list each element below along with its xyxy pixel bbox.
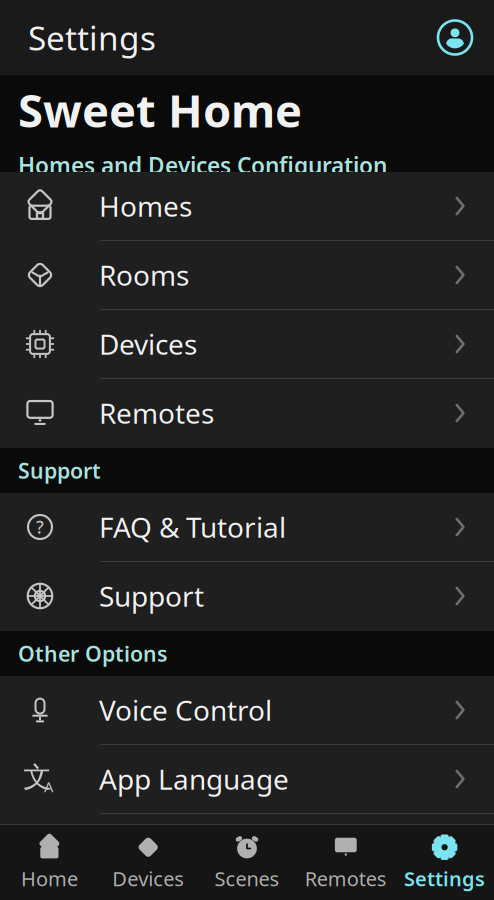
staticText: FAQ & Tutorial xyxy=(99,508,286,546)
button[interactable]: Devices xyxy=(0,310,494,379)
staticText: 文 xyxy=(23,760,51,794)
staticText: Voice Control xyxy=(99,691,272,729)
staticText: Settings xyxy=(28,15,156,60)
staticText: A xyxy=(44,777,53,796)
staticText: Remotes xyxy=(99,394,214,432)
staticText: ? xyxy=(36,515,44,538)
staticText: Home xyxy=(21,865,78,892)
staticText: Scenes xyxy=(214,865,279,892)
button[interactable]: 文 xyxy=(0,745,494,814)
button[interactable]: Settings xyxy=(395,825,494,899)
button[interactable]: Remotes xyxy=(0,379,494,448)
staticText: Homes and Devices Configuration xyxy=(18,150,387,180)
staticText: Remotes xyxy=(305,865,387,892)
button[interactable]: Remotes xyxy=(296,825,395,899)
button[interactable]: Homes xyxy=(0,172,494,241)
staticText: Rooms xyxy=(99,256,189,294)
button[interactable]: Voice Control xyxy=(0,676,494,745)
staticText: Devices xyxy=(99,325,197,363)
staticText: Other Options xyxy=(18,639,168,668)
button[interactable]: Support xyxy=(0,562,494,631)
button[interactable]: Home xyxy=(0,825,99,899)
staticText: App Language xyxy=(99,760,289,798)
staticText: Homes xyxy=(99,187,192,225)
staticText: Devices xyxy=(112,865,184,892)
button[interactable]: Devices xyxy=(99,825,198,899)
button[interactable]: ? xyxy=(0,493,494,562)
button[interactable]: Scenes xyxy=(198,825,296,899)
button[interactable]: Account xyxy=(438,10,494,64)
staticText: Settings xyxy=(404,865,485,892)
staticText: Support xyxy=(18,456,101,485)
staticText: Sweet Home xyxy=(18,80,302,140)
staticText: Support xyxy=(99,577,204,615)
button[interactable]: Rooms xyxy=(0,241,494,310)
